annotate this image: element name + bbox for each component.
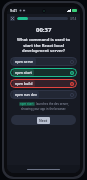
staticText: npm run dev [15, 92, 37, 97]
staticText: 00:37 [36, 26, 52, 34]
staticText: npm start [15, 70, 32, 75]
button[interactable]: npm start [10, 68, 77, 77]
staticText: npm build [15, 81, 33, 86]
button[interactable]: npm serve [10, 57, 77, 66]
staticText: Next [39, 118, 48, 123]
staticText: showing your app in the browser. [21, 107, 66, 111]
staticText: npm start [20, 102, 34, 106]
staticText: launches the dev server, [36, 102, 69, 106]
staticText: 3/14 [70, 17, 77, 21]
button[interactable]: npm run dev [10, 90, 77, 99]
button[interactable]: npm build [10, 79, 77, 88]
button[interactable]: Close quiz [10, 16, 15, 21]
staticText: 9:41 [10, 8, 17, 13]
staticText: npm serve [15, 59, 34, 64]
staticText: What command is used to start the React … [12, 37, 75, 53]
button[interactable]: Next [11, 115, 76, 125]
